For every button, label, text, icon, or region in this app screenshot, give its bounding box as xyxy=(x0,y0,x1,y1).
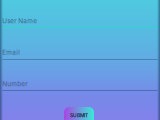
button[interactable]: Email xyxy=(2,48,158,63)
staticText: SUBMIT xyxy=(70,113,88,118)
button[interactable]: User Name xyxy=(2,17,158,31)
button[interactable]: Number xyxy=(2,80,158,94)
staticText: Email xyxy=(2,48,20,56)
staticText: Number xyxy=(2,80,27,88)
staticText: User Name xyxy=(2,17,37,25)
button[interactable]: SUBMIT xyxy=(64,107,94,120)
